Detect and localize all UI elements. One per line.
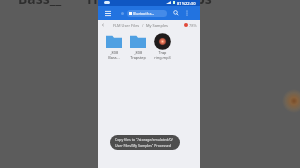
staticText: ps [196,0,212,8]
staticText: Bluetooth a... [133,11,155,16]
button[interactable]: _808 Bass... [102,32,126,60]
button[interactable]: _808 Trapstep [126,32,150,60]
staticText: 81% [177,1,186,7]
staticText: Hi [87,0,102,8]
button[interactable]: More options [182,8,192,18]
button[interactable]: Bluetooth a... [127,10,167,17]
staticText: _808 Trapstep [130,50,146,60]
button[interactable]: Search [171,8,181,18]
staticText: / [142,23,144,28]
button[interactable]: FLM User Files [113,23,140,28]
button[interactable]: Navigation menu [103,8,113,18]
staticText: 22:30 [185,1,196,7]
button[interactable]: Trap ring.mp3 [150,32,174,60]
staticText: Bass__ [18,0,62,8]
staticText: 78% [189,23,197,28]
button[interactable]: My Samples [146,23,168,28]
staticText: Copy files to "/storage/emulated/0/FLM [115,137,175,142]
staticText: _808 Bass... [108,50,120,60]
staticText: Trap ring.mp3 [154,50,171,60]
staticText: User Files/My Samples" Processed [115,143,171,148]
